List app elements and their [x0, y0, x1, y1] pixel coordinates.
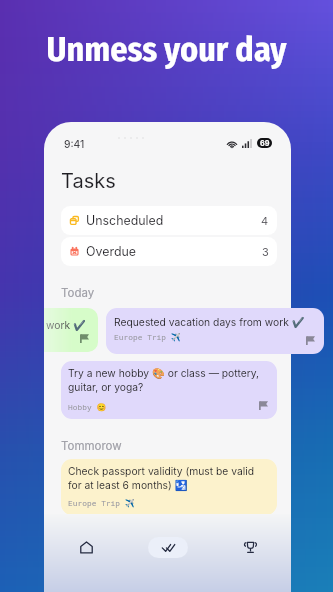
button[interactable]: Check passport validity (must be valid f…: [61, 459, 277, 515]
button[interactable]: Try a new hobby 🎨 or class — pottery, gu…: [61, 361, 277, 419]
staticText: 9:41: [64, 138, 85, 150]
staticText: Overdue: [86, 244, 137, 259]
staticText: Tasks: [61, 169, 116, 193]
button[interactable]: Tasks: [148, 537, 188, 558]
staticText: Today: [61, 286, 95, 300]
button[interactable]: work ✔: [44, 308, 98, 352]
button[interactable]: Overdue: [61, 237, 277, 266]
staticText: 3: [262, 245, 269, 258]
staticText: 69: [260, 139, 270, 148]
staticText: 4: [261, 214, 269, 227]
staticText: Europe Trip ✈️: [114, 332, 181, 342]
button[interactable]: Unscheduled: [61, 206, 277, 235]
button[interactable]: Achievements: [230, 537, 270, 558]
staticText: Tommorow: [61, 439, 122, 453]
staticText: Requested vacation days from work ✔: [114, 316, 305, 328]
staticText: Check passport validity (must be valid f…: [68, 465, 255, 491]
staticText: Unscheduled: [86, 213, 164, 228]
staticText: Try a new hobby 🎨 or class — pottery, gu…: [68, 367, 260, 393]
staticText: Europe Trip ✈️: [68, 498, 135, 508]
staticText: work ✔: [46, 319, 86, 331]
staticText: Unmess your day: [0, 29, 333, 70]
button[interactable]: Requested vacation days from work ✔: [106, 308, 324, 354]
button[interactable]: Home: [66, 537, 106, 558]
staticText: Hobby 😊: [68, 402, 107, 412]
